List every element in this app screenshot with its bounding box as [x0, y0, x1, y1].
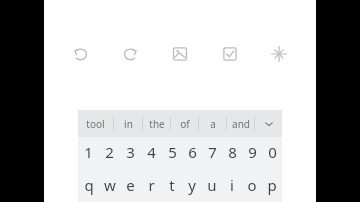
- button[interactable]: e: [120, 167, 141, 202]
- button[interactable]: y: [182, 167, 202, 202]
- staticText: and: [232, 117, 250, 131]
- button[interactable]: i: [222, 167, 242, 202]
- button[interactable]: w: [99, 167, 120, 202]
- button[interactable]: o: [242, 167, 262, 202]
- staticText: t: [169, 175, 175, 195]
- staticText: 3: [126, 142, 135, 162]
- button[interactable]: in: [114, 110, 142, 137]
- staticText: w: [104, 175, 116, 195]
- staticText: y: [188, 175, 196, 195]
- button[interactable]: 3: [120, 137, 141, 167]
- button[interactable]: tool: [78, 110, 113, 137]
- button[interactable]: 5: [162, 137, 182, 167]
- button[interactable]: 0: [262, 137, 282, 167]
- staticText: o: [247, 175, 257, 195]
- button[interactable]: 7: [202, 137, 222, 167]
- button[interactable]: 2: [99, 137, 120, 167]
- button[interactable]: u: [202, 167, 222, 202]
- staticText: 2: [105, 142, 114, 162]
- staticText: 5: [168, 142, 177, 162]
- button[interactable]: p: [262, 167, 282, 202]
- button[interactable]: 4: [141, 137, 162, 167]
- staticText: 9: [248, 142, 257, 162]
- button[interactable]: 8: [222, 137, 242, 167]
- staticText: e: [126, 175, 135, 195]
- button[interactable]: q: [78, 167, 99, 202]
- staticText: 0: [268, 142, 277, 162]
- staticText: of: [180, 117, 190, 131]
- button[interactable]: a: [199, 110, 226, 137]
- staticText: a: [210, 117, 216, 131]
- staticText: the: [149, 117, 165, 131]
- button[interactable]: 1: [78, 137, 99, 167]
- button[interactable]: Expand suggestions: [255, 110, 282, 137]
- button[interactable]: 6: [182, 137, 202, 167]
- staticText: p: [267, 175, 277, 195]
- staticText: 1: [84, 142, 93, 162]
- button[interactable]: Checklist: [217, 41, 243, 67]
- button[interactable]: of: [171, 110, 198, 137]
- button[interactable]: 9: [242, 137, 262, 167]
- button[interactable]: Redo: [117, 41, 143, 67]
- button[interactable]: the: [143, 110, 170, 137]
- staticText: tool: [86, 117, 105, 131]
- staticText: 6: [188, 142, 197, 162]
- button[interactable]: Magic: [266, 41, 292, 67]
- staticText: 8: [228, 142, 237, 162]
- button[interactable]: Insert image: [167, 41, 193, 67]
- staticText: r: [148, 175, 155, 195]
- button[interactable]: and: [227, 110, 254, 137]
- staticText: in: [124, 117, 133, 131]
- staticText: 4: [147, 142, 156, 162]
- button[interactable]: Undo: [68, 41, 94, 67]
- button[interactable]: t: [162, 167, 182, 202]
- button[interactable]: r: [141, 167, 162, 202]
- staticText: q: [84, 175, 94, 195]
- staticText: 7: [208, 142, 217, 162]
- staticText: u: [207, 175, 217, 195]
- staticText: i: [230, 175, 234, 195]
